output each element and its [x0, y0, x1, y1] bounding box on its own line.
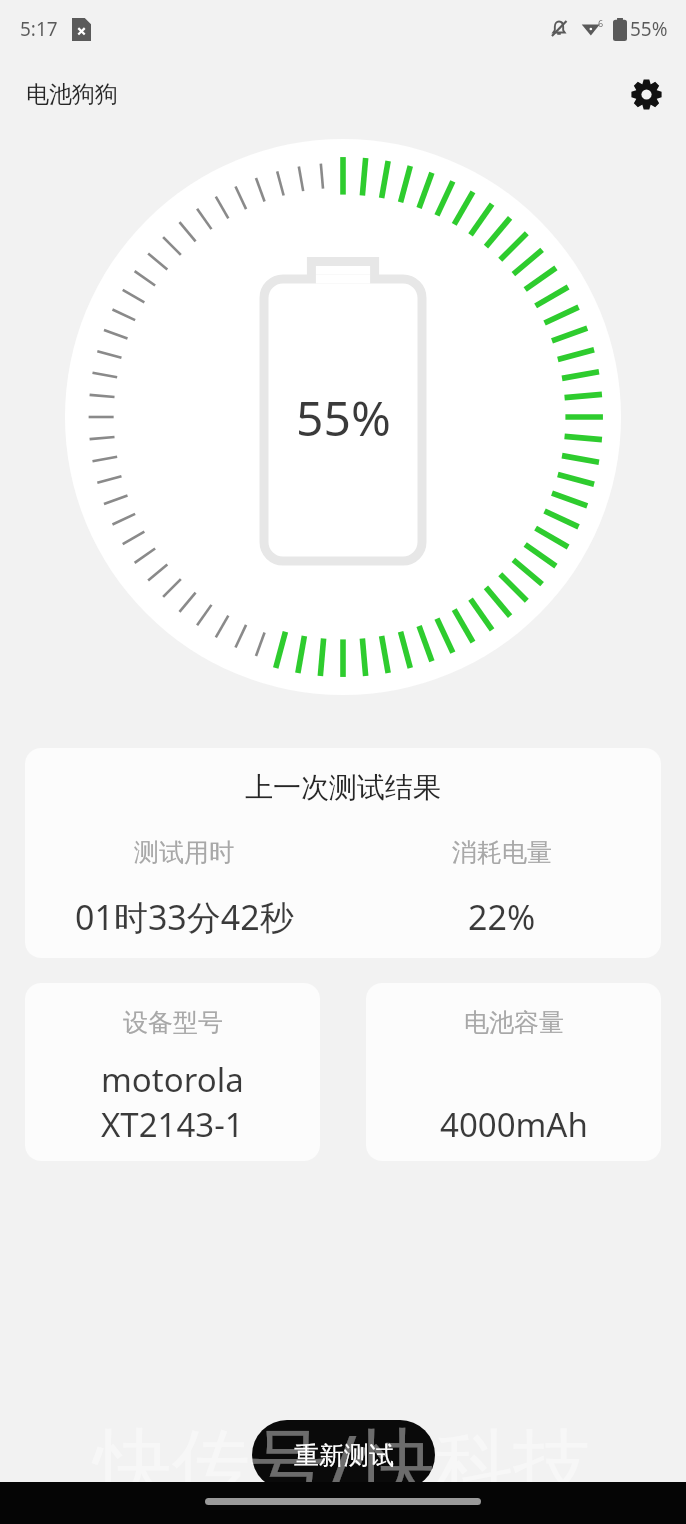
button[interactable]: Settings [620, 68, 672, 120]
button[interactable]: 设备型号 [25, 983, 320, 1161]
staticText: 01时33分42秒 [75, 894, 294, 940]
staticText: 电池狗狗 [26, 80, 118, 109]
staticText: 重新测试 [294, 1440, 394, 1471]
staticText: motorola [101, 1057, 244, 1102]
button[interactable]: 重新测试 [252, 1420, 435, 1490]
staticText: 电池容量 [464, 1007, 564, 1038]
button[interactable]: Home [205, 1498, 481, 1505]
staticText: 6 [598, 17, 604, 29]
button[interactable]: 上一次测试结果 [25, 748, 661, 958]
staticText: 5:17 [20, 16, 58, 42]
staticText: 22% [468, 894, 536, 940]
staticText: 测试用时 [134, 837, 234, 868]
staticText: 设备型号 [123, 1007, 223, 1038]
staticText: 上一次测试结果 [25, 770, 661, 805]
staticText: 4000mAh [440, 1102, 588, 1147]
staticText: 55% [296, 385, 391, 450]
button[interactable]: 电池容量 [366, 983, 661, 1161]
staticText: XT2143-1 [101, 1102, 244, 1147]
staticText: 快传号/快科技 [94, 1409, 592, 1516]
staticText: 55% [630, 16, 668, 42]
staticText: 消耗电量 [452, 837, 552, 868]
